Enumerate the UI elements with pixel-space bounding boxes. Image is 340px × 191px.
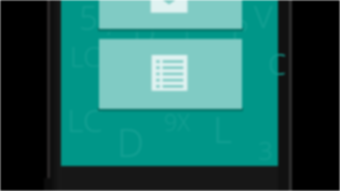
staticText: LC [70, 38, 101, 75]
staticText: 5 [79, 0, 98, 40]
staticText: L [213, 103, 233, 153]
staticText: V [254, 0, 273, 38]
staticText: D [133, 10, 156, 54]
button[interactable]: Compose message [99, 0, 242, 29]
staticText: / [107, 3, 118, 44]
staticText: D [117, 116, 145, 168]
staticText: C [268, 44, 287, 83]
staticText: P [231, 9, 249, 50]
staticText: LC [67, 98, 103, 142]
staticText: 1 [179, 11, 194, 46]
staticText: 3 [258, 132, 273, 167]
staticText: 9X [164, 106, 190, 137]
button[interactable]: Open list [99, 39, 242, 109]
